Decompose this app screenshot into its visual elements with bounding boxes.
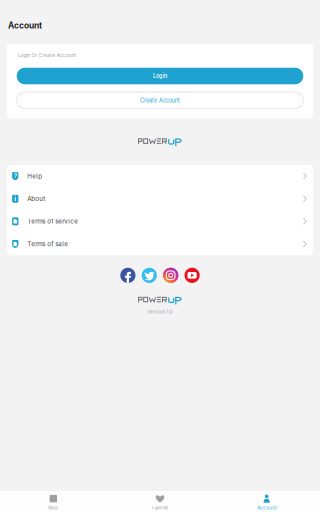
button[interactable]: i <box>7 187 313 210</box>
staticText: Create Account <box>140 97 180 104</box>
staticText: Help <box>27 172 42 180</box>
staticText: Terms of sale <box>27 240 68 248</box>
button[interactable]: Facebook <box>120 268 135 283</box>
staticText: Favorite <box>151 505 168 511</box>
staticText: Login <box>153 73 167 79</box>
button[interactable]: Map <box>0 489 107 512</box>
staticText: Account <box>8 20 42 31</box>
staticText: Terms of service <box>27 217 78 225</box>
staticText: Account <box>257 505 276 511</box>
button[interactable]: Terms of sale <box>7 233 313 255</box>
staticText: About <box>27 195 45 202</box>
button[interactable]: Account <box>213 489 320 512</box>
button[interactable]: Instagram <box>163 268 178 283</box>
button[interactable]: Twitter <box>142 268 157 283</box>
button[interactable]: Favorite <box>107 489 213 512</box>
button[interactable]: Terms of service <box>7 210 313 233</box>
button[interactable]: Login <box>7 58 313 84</box>
button[interactable]: YouTube <box>184 268 200 283</box>
staticText: ? <box>14 172 17 180</box>
staticText: Version 1.0 <box>147 309 172 315</box>
staticText: Login Or Create Account <box>18 52 77 58</box>
staticText: Map <box>48 505 58 511</box>
button[interactable]: Create Account <box>7 84 313 109</box>
staticText: i <box>14 195 16 203</box>
button[interactable]: ? <box>7 165 313 187</box>
